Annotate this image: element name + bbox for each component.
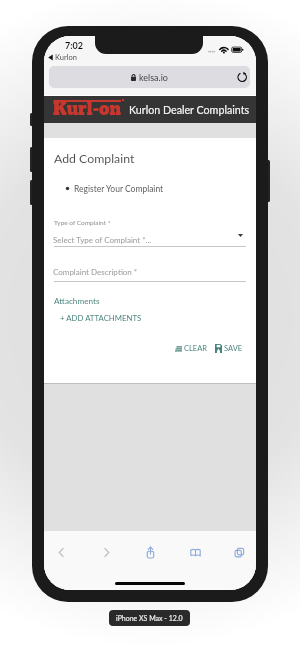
button[interactable]: Kurl-on — [52, 96, 132, 122]
button[interactable]: + ADD ATTACHMENTS — [60, 313, 142, 322]
staticText: Add Complaint — [54, 151, 135, 166]
staticText: Type of Complaint * — [54, 219, 111, 227]
staticText: 7:02 — [65, 40, 83, 51]
staticText: + ADD ATTACHMENTS — [60, 313, 142, 322]
button[interactable]: CLEAR — [175, 344, 207, 353]
button[interactable]: kelsa.io — [49, 66, 250, 88]
button[interactable]: Reload page — [232, 67, 251, 86]
staticText: Select Type of Complaint *... — [53, 235, 152, 245]
staticText: Kurl-on — [53, 98, 122, 121]
staticText: Complaint Description * — [53, 267, 138, 277]
button[interactable]: SAVE — [215, 344, 243, 353]
button[interactable]: Tabs — [224, 541, 254, 563]
staticText: Kurlon — [55, 53, 77, 62]
staticText: CLEAR — [184, 344, 207, 353]
staticText: Attachments — [54, 296, 100, 306]
button[interactable]: Kurlon — [48, 53, 77, 62]
staticText: Register Your Complaint — [74, 184, 164, 194]
staticText: iPhone XS Max - 12.0 — [116, 614, 183, 622]
staticText: kelsa.io — [139, 72, 168, 83]
staticText: SAVE — [224, 344, 243, 353]
button[interactable]: iPhone XS Max - 12.0 — [109, 610, 190, 626]
button[interactable]: Forward — [91, 541, 121, 563]
button[interactable]: Bookmarks — [180, 541, 210, 563]
staticText: Kurlon Dealer Complaints — [129, 103, 250, 116]
button[interactable]: Back — [46, 541, 76, 563]
button[interactable]: Share — [135, 541, 165, 563]
